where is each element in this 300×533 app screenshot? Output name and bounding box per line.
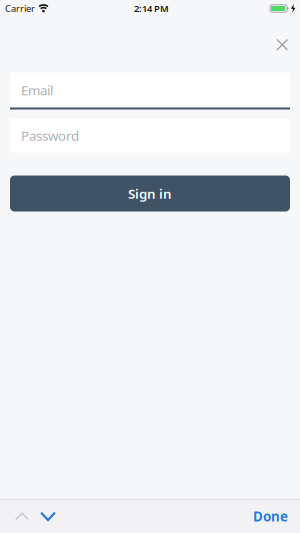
button[interactable]: Done	[253, 499, 300, 533]
staticText: Done	[253, 507, 288, 525]
staticText: Password	[21, 127, 79, 144]
staticText: Email	[21, 81, 53, 99]
staticText: 2:14 PM	[134, 2, 169, 15]
staticText: Carrier	[5, 2, 35, 15]
button[interactable]: Close	[270, 33, 294, 56]
button[interactable]: Sign in	[10, 175, 290, 211]
staticText: Sign in	[128, 185, 172, 202]
button[interactable]: Previous field	[10, 502, 34, 530]
button[interactable]: Password	[10, 118, 290, 152]
button[interactable]: Next field	[34, 501, 62, 532]
button[interactable]: Email	[10, 72, 290, 109]
